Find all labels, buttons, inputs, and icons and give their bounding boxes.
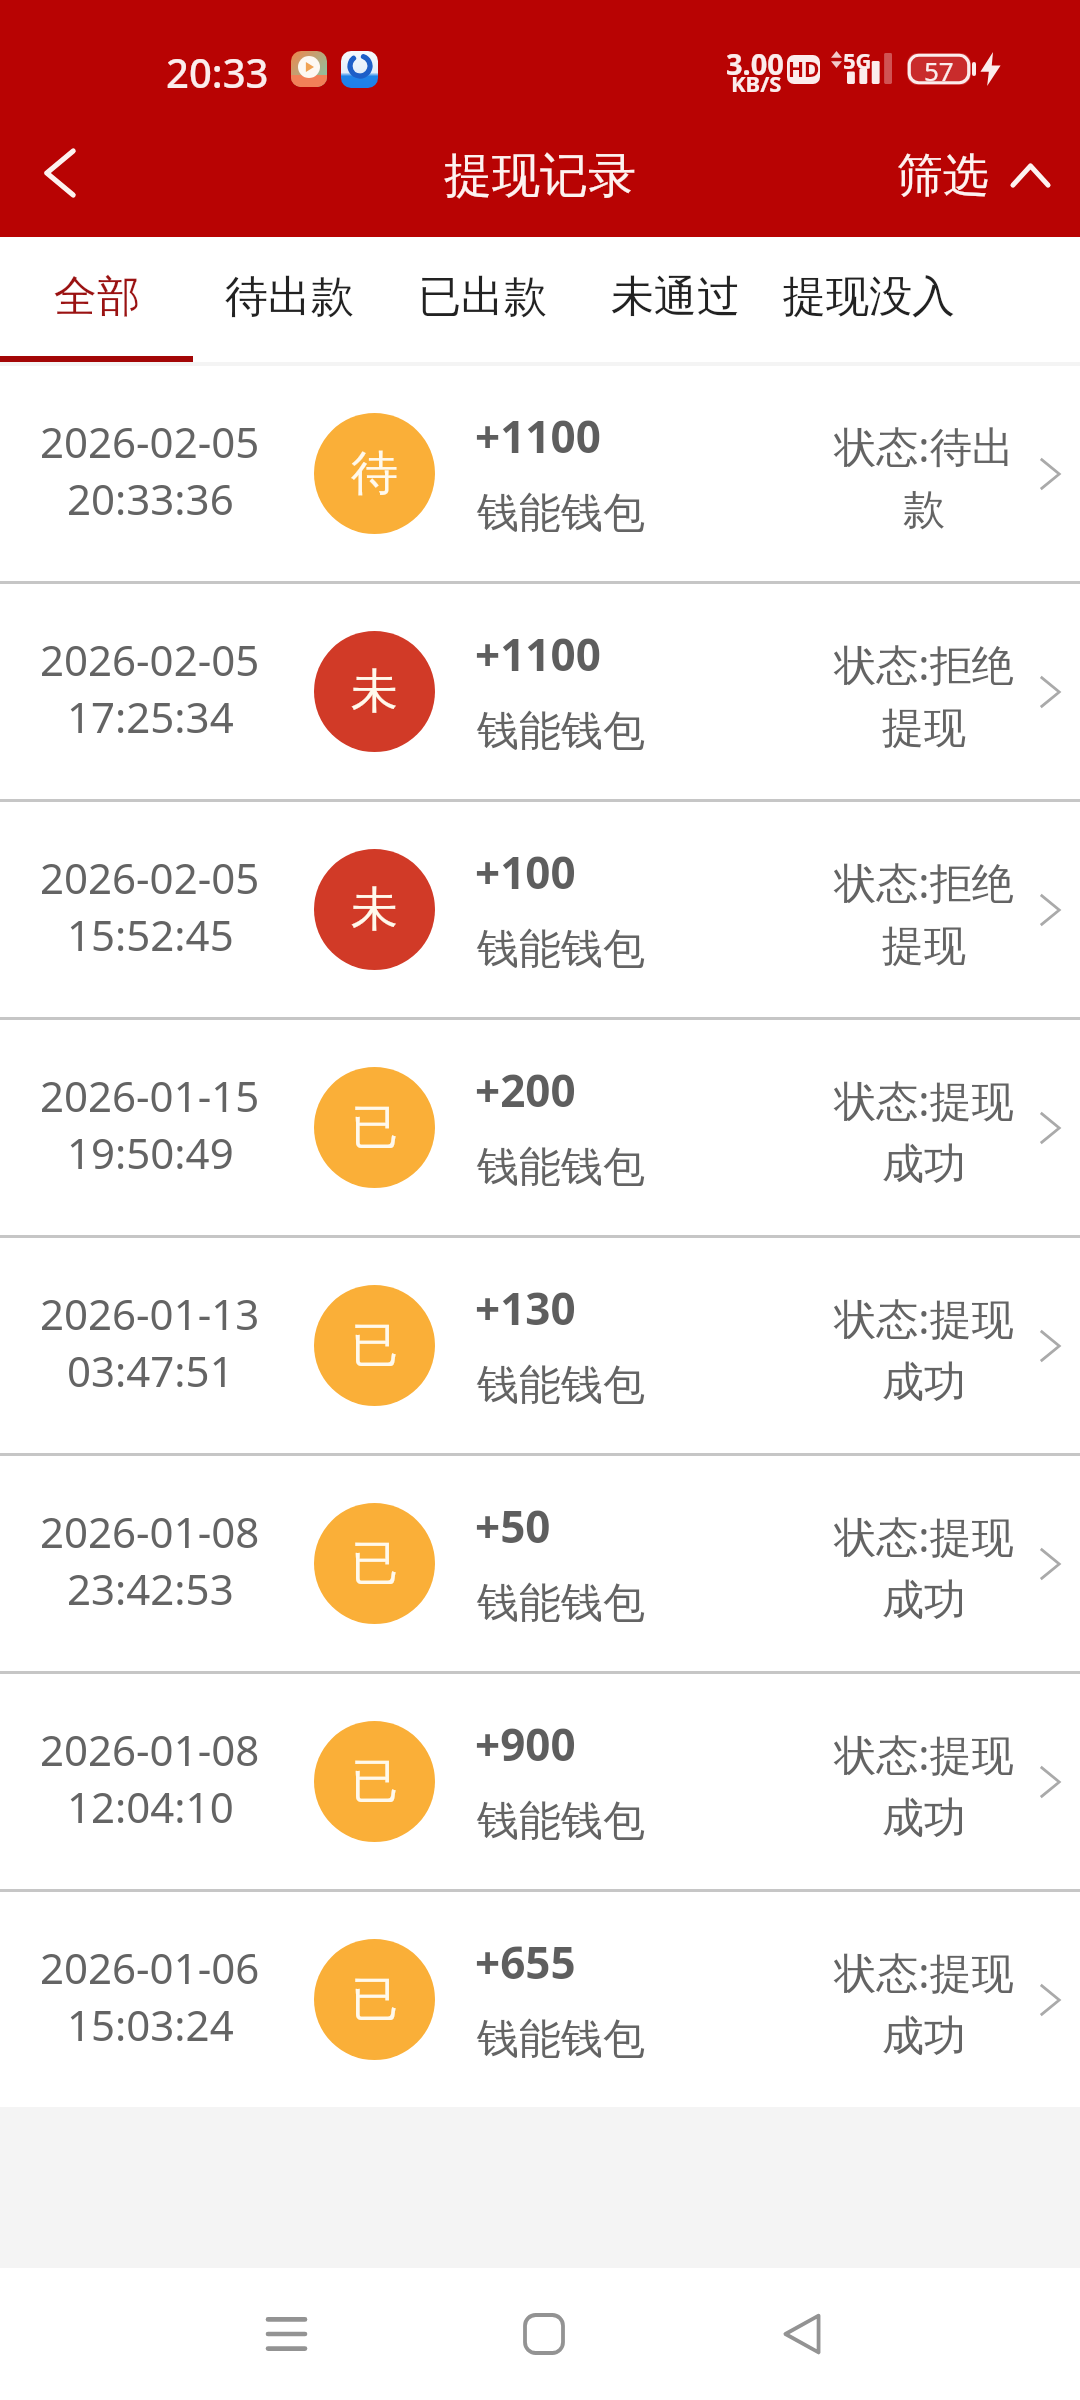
staticText: 提现记录	[444, 146, 636, 206]
staticText: 状态:拒绝提现	[831, 635, 1017, 755]
button[interactable]: 提现没入	[772, 237, 965, 356]
staticText: 15:03:24	[67, 1996, 234, 2053]
button[interactable]: 2026-01-08	[0, 1674, 1080, 1889]
staticText: 20:33	[166, 45, 269, 99]
staticText: 2026-02-05	[40, 413, 260, 470]
button[interactable]: 未通过	[579, 237, 772, 356]
button[interactable]: 待出款	[193, 237, 386, 356]
staticText: +50	[475, 1496, 551, 1556]
staticText: 已	[351, 1970, 398, 2029]
staticText: 未	[351, 880, 398, 939]
staticText: 状态:待出款	[831, 417, 1017, 537]
staticText: 未	[351, 662, 398, 721]
staticText: 2026-01-08	[40, 1721, 260, 1778]
staticText: 2026-01-13	[40, 1285, 260, 1342]
staticText: +200	[475, 1060, 576, 1120]
staticText: 未通过	[611, 270, 740, 324]
staticText: +100	[475, 842, 576, 902]
button[interactable]: 2026-02-05	[0, 366, 1080, 581]
staticText: 待出款	[225, 270, 354, 324]
staticText: 19:50:49	[67, 1124, 234, 1181]
staticText: 钱能钱包	[477, 487, 645, 540]
button[interactable]: Home	[454, 2268, 634, 2400]
staticText: KB/S	[731, 68, 782, 98]
button[interactable]: 全部	[0, 237, 193, 356]
staticText: 2026-02-05	[40, 631, 260, 688]
staticText: 钱能钱包	[477, 705, 645, 758]
staticText: 已	[351, 1752, 398, 1811]
staticText: 2026-01-06	[40, 1939, 260, 1996]
staticText: 已出款	[418, 270, 547, 324]
staticText: +130	[475, 1278, 576, 1338]
staticText: 2026-02-05	[40, 849, 260, 906]
button[interactable]: 筛选 Filter	[873, 118, 1080, 237]
button[interactable]: 2026-01-13	[0, 1238, 1080, 1453]
staticText: 提现没入	[783, 270, 955, 324]
staticText: +900	[475, 1714, 576, 1774]
staticText: 钱能钱包	[477, 2013, 645, 2066]
button[interactable]: 2026-01-06	[0, 1892, 1080, 2107]
button[interactable]: 2026-02-05	[0, 584, 1080, 799]
button[interactable]: 已出款	[386, 237, 579, 356]
staticText: 3.00	[726, 44, 784, 83]
staticText: 钱能钱包	[477, 1359, 645, 1412]
staticText: 20:33:36	[67, 470, 234, 527]
button[interactable]: Recent apps	[196, 2268, 376, 2400]
staticText: 全部	[54, 270, 140, 324]
staticText: 2026-01-08	[40, 1503, 260, 1560]
button[interactable]: Back	[0, 118, 118, 237]
staticText: 15:52:45	[67, 906, 234, 963]
staticText: 23:42:53	[67, 1560, 234, 1617]
staticText: 2026-01-15	[40, 1067, 260, 1124]
staticText: 已	[351, 1534, 398, 1593]
staticText: 钱能钱包	[477, 1577, 645, 1630]
staticText: 待	[351, 444, 398, 503]
staticText: 已	[351, 1316, 398, 1375]
staticText: 12:04:10	[67, 1778, 234, 1835]
staticText: 状态:提现成功	[831, 1289, 1017, 1409]
button[interactable]: Back	[712, 2268, 892, 2400]
staticText: +655	[475, 1932, 576, 1992]
staticText: 03:47:51	[67, 1342, 234, 1399]
staticText: +1100	[475, 624, 601, 684]
button[interactable]: 2026-02-05	[0, 802, 1080, 1017]
staticText: 已	[351, 1098, 398, 1157]
staticText: 状态:提现成功	[831, 1725, 1017, 1845]
button[interactable]: 2026-01-08	[0, 1456, 1080, 1671]
staticText: 状态:拒绝提现	[831, 853, 1017, 973]
staticText: 钱能钱包	[477, 923, 645, 976]
staticText: 57	[924, 53, 954, 85]
button[interactable]: 2026-01-15	[0, 1020, 1080, 1235]
staticText: 17:25:34	[67, 688, 234, 745]
staticText: 5G	[843, 45, 872, 75]
staticText: 状态:提现成功	[831, 1507, 1017, 1627]
staticText: 状态:提现成功	[831, 1943, 1017, 2063]
staticText: 钱能钱包	[477, 1795, 645, 1848]
staticText: 状态:提现成功	[831, 1071, 1017, 1191]
staticText: 钱能钱包	[477, 1141, 645, 1194]
staticText: +1100	[475, 406, 601, 466]
staticText: HD	[788, 55, 820, 84]
staticText: 筛选	[897, 147, 989, 205]
